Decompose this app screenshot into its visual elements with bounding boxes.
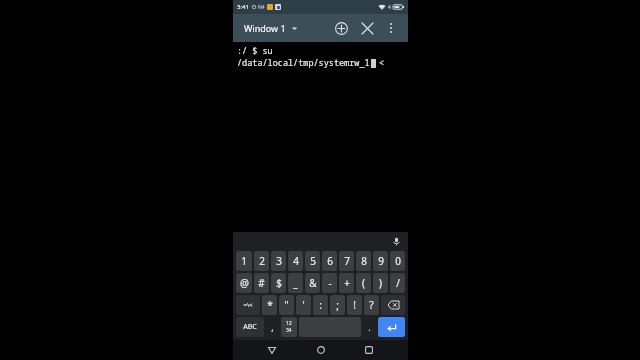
staticText: , bbox=[271, 321, 274, 333]
button[interactable]: 0 bbox=[390, 251, 405, 271]
staticText: & bbox=[309, 276, 317, 290]
button[interactable]: ' bbox=[296, 295, 311, 315]
staticText: Window 1 bbox=[244, 22, 286, 34]
button[interactable]: . bbox=[363, 317, 376, 337]
staticText: ( bbox=[362, 276, 365, 290]
staticText: 3 bbox=[276, 254, 282, 268]
button[interactable]: - bbox=[322, 273, 337, 293]
button[interactable]: # bbox=[254, 273, 269, 293]
staticText: 0 bbox=[395, 254, 401, 268]
staticText: # bbox=[258, 276, 265, 290]
staticText: N4 bbox=[258, 4, 265, 11]
staticText: 3:41 bbox=[237, 3, 249, 11]
button[interactable]: : bbox=[313, 295, 328, 315]
staticText: 4 bbox=[293, 254, 299, 268]
button[interactable]: " bbox=[279, 295, 294, 315]
staticText: /data/local/tmp/systemrw_1 bbox=[237, 57, 370, 69]
button[interactable]: Home bbox=[311, 340, 331, 360]
button[interactable]: * bbox=[262, 295, 277, 315]
staticText: @ bbox=[240, 276, 249, 290]
button[interactable]: Numbers bbox=[281, 317, 297, 337]
button[interactable]: 3 bbox=[271, 251, 286, 271]
button[interactable]: Recents bbox=[359, 340, 379, 360]
staticText: : bbox=[319, 298, 322, 312]
button[interactable]: / bbox=[390, 273, 405, 293]
button[interactable]: ) bbox=[373, 273, 388, 293]
button[interactable]: @ bbox=[236, 273, 252, 293]
button[interactable]: & bbox=[305, 273, 320, 293]
button[interactable]: More options bbox=[380, 17, 402, 39]
staticText: =\< bbox=[243, 301, 253, 309]
button[interactable]: Back bbox=[262, 340, 282, 360]
button[interactable]: 4 bbox=[288, 251, 303, 271]
button[interactable]: $ bbox=[271, 273, 286, 293]
button[interactable]: 6 bbox=[322, 251, 337, 271]
staticText: 7 bbox=[344, 254, 350, 268]
button[interactable]: Backspace bbox=[381, 295, 405, 315]
button[interactable]: 2 bbox=[254, 251, 269, 271]
button[interactable]: New window bbox=[329, 16, 353, 40]
staticText: - bbox=[328, 276, 332, 290]
staticText: 6 bbox=[327, 254, 333, 268]
staticText: :/ $ su bbox=[237, 45, 273, 57]
button[interactable]: ? bbox=[364, 295, 379, 315]
button[interactable]: ! bbox=[347, 295, 362, 315]
button[interactable]: ABC bbox=[236, 317, 264, 337]
staticText: " bbox=[284, 298, 289, 312]
staticText: 12 bbox=[286, 320, 292, 327]
button[interactable]: Close window bbox=[355, 16, 379, 40]
staticText: ! bbox=[353, 298, 356, 312]
staticText: ; bbox=[336, 298, 339, 312]
button[interactable]: Voice input bbox=[388, 233, 404, 249]
staticText: $ bbox=[276, 276, 282, 290]
button[interactable]: Enter bbox=[378, 317, 405, 337]
button[interactable]: 5 bbox=[305, 251, 320, 271]
staticText: ABC bbox=[243, 322, 257, 332]
staticText: _ bbox=[293, 276, 298, 290]
button[interactable]: Window 1 bbox=[242, 18, 300, 38]
button[interactable]: 8 bbox=[356, 251, 371, 271]
staticText: < bbox=[379, 57, 385, 69]
staticText: . bbox=[368, 321, 371, 333]
button[interactable]: + bbox=[339, 273, 354, 293]
staticText: 5 bbox=[310, 254, 316, 268]
button[interactable]: 7 bbox=[339, 251, 354, 271]
button[interactable]: ; bbox=[330, 295, 345, 315]
staticText: * bbox=[267, 298, 273, 312]
staticText: 2 bbox=[259, 254, 265, 268]
staticText: 9 bbox=[378, 254, 384, 268]
button[interactable]: =\< bbox=[236, 295, 260, 315]
button[interactable]: 9 bbox=[373, 251, 388, 271]
staticText: + bbox=[344, 276, 350, 290]
button[interactable]: 1 bbox=[236, 251, 252, 271]
staticText: ) bbox=[379, 276, 382, 290]
staticText: 1 bbox=[241, 254, 247, 268]
button[interactable]: , bbox=[266, 317, 279, 337]
staticText: 4 bbox=[388, 4, 391, 11]
staticText: 34 bbox=[286, 327, 292, 334]
button[interactable]: _ bbox=[288, 273, 303, 293]
staticText: / bbox=[396, 276, 400, 290]
button[interactable]: ( bbox=[356, 273, 371, 293]
staticText: ? bbox=[369, 298, 374, 312]
staticText: 8 bbox=[361, 254, 367, 268]
staticText: ' bbox=[302, 298, 305, 312]
